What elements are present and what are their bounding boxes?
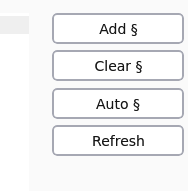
staticText: Clear § — [94, 58, 143, 74]
staticText: Auto § — [96, 96, 140, 112]
staticText: Clear § — [94, 58, 143, 74]
staticText: Refresh — [92, 133, 145, 149]
button[interactable]: Refresh — [52, 125, 184, 156]
button[interactable]: Add § — [52, 13, 184, 44]
staticText: Auto § — [96, 96, 140, 112]
staticText: Refresh — [92, 133, 145, 149]
button[interactable]: Clear § — [52, 50, 184, 81]
staticText: Add § — [99, 21, 138, 37]
button[interactable]: Auto § — [52, 88, 184, 119]
staticText: Add § — [99, 21, 138, 37]
